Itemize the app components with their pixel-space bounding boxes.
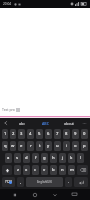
staticText: g: [43, 155, 46, 161]
staticText: about: [64, 121, 74, 126]
button[interactable]: 4: [27, 129, 34, 139]
button[interactable]: 9: [72, 129, 79, 139]
button[interactable]: g: [41, 153, 48, 163]
staticText: j: [62, 155, 64, 161]
button[interactable]: abc: [10, 118, 34, 128]
button[interactable]: o: [72, 141, 79, 151]
button[interactable]: Symbols: [2, 177, 15, 187]
button[interactable]: p: [81, 141, 88, 151]
staticText: o: [74, 143, 77, 149]
staticText: English(UK): [37, 180, 52, 184]
button[interactable]: b: [50, 165, 57, 175]
staticText: 7: [56, 131, 59, 137]
staticText: k: [70, 155, 73, 161]
button[interactable]: ,: [17, 177, 24, 187]
staticText: 9: [74, 131, 77, 137]
staticText: l: [80, 155, 82, 161]
button[interactable]: c: [32, 165, 39, 175]
button[interactable]: .: [65, 177, 72, 187]
button[interactable]: k: [68, 153, 75, 163]
button[interactable]: i: [63, 141, 70, 151]
staticText: 3: [20, 131, 23, 137]
button[interactable]: 2: [10, 129, 16, 139]
button[interactable]: Backspace: [77, 165, 88, 175]
button[interactable]: s: [14, 153, 21, 163]
button[interactable]: Shift: [2, 165, 12, 175]
button[interactable]: about: [57, 118, 80, 128]
button[interactable]: Enter: [74, 177, 88, 187]
button[interactable]: 3: [18, 129, 25, 139]
staticText: z: [17, 167, 19, 173]
button[interactable]: d: [23, 153, 30, 163]
button[interactable]: h: [50, 153, 57, 163]
staticText: 6: [47, 131, 50, 137]
staticText: 20:04: [3, 2, 12, 6]
staticText: 2: [12, 131, 15, 137]
button[interactable]: Home: [30, 190, 39, 199]
staticText: ?123: [5, 180, 12, 184]
button[interactable]: e: [18, 141, 25, 151]
staticText: q: [4, 143, 7, 149]
staticText: .: [68, 179, 70, 185]
button[interactable]: l: [77, 153, 84, 163]
staticText: x: [25, 167, 28, 173]
staticText: p: [83, 143, 86, 149]
staticText: r: [30, 143, 32, 149]
staticText: u: [56, 143, 59, 149]
staticText: v: [43, 167, 46, 173]
button[interactable]: w: [10, 141, 16, 151]
staticText: t: [39, 143, 41, 149]
staticText: m: [70, 167, 74, 173]
button[interactable]: ABC: [34, 118, 57, 128]
staticText: ABC: [42, 121, 49, 126]
staticText: Text pro: [2, 107, 15, 112]
staticText: a: [7, 155, 10, 161]
button[interactable]: r: [27, 141, 34, 151]
staticText: w: [11, 143, 15, 149]
button[interactable]: Back: [50, 190, 59, 199]
button[interactable]: Expand toolbar: [2, 119, 10, 127]
staticText: 1: [4, 131, 7, 137]
button[interactable]: More options: [80, 119, 88, 127]
button[interactable]: 8: [63, 129, 70, 139]
staticText: f: [35, 155, 37, 161]
staticText: s: [16, 155, 19, 161]
button[interactable]: y: [45, 141, 52, 151]
button[interactable]: x: [23, 165, 30, 175]
button[interactable]: Recents: [10, 190, 19, 199]
button[interactable]: 0: [81, 129, 88, 139]
staticText: abc: [19, 121, 25, 126]
button[interactable]: Hide keyboard: [70, 190, 79, 199]
staticText: d: [25, 155, 28, 161]
staticText: h: [52, 155, 55, 161]
staticText: 0: [83, 131, 86, 137]
button[interactable]: v: [41, 165, 48, 175]
staticText: y: [47, 143, 50, 149]
staticText: n: [61, 167, 64, 173]
button[interactable]: n: [59, 165, 66, 175]
button[interactable]: m: [68, 165, 75, 175]
button[interactable]: u: [54, 141, 61, 151]
staticText: ,: [20, 179, 22, 185]
staticText: b: [52, 167, 55, 173]
button[interactable]: English(UK): [26, 177, 63, 187]
button[interactable]: t: [36, 141, 43, 151]
button[interactable]: 6: [45, 129, 52, 139]
button[interactable]: a: [5, 153, 12, 163]
button[interactable]: q: [2, 141, 8, 151]
staticText: 5: [38, 131, 41, 137]
staticText: e: [20, 143, 23, 149]
button[interactable]: f: [32, 153, 39, 163]
staticText: 4: [29, 131, 32, 137]
button[interactable]: z: [14, 165, 21, 175]
button[interactable]: 1: [2, 129, 8, 139]
staticText: i: [66, 143, 68, 149]
button[interactable]: 5: [36, 129, 43, 139]
button[interactable]: 7: [54, 129, 61, 139]
staticText: 8: [65, 131, 68, 137]
staticText: c: [34, 167, 37, 173]
button[interactable]: j: [59, 153, 66, 163]
